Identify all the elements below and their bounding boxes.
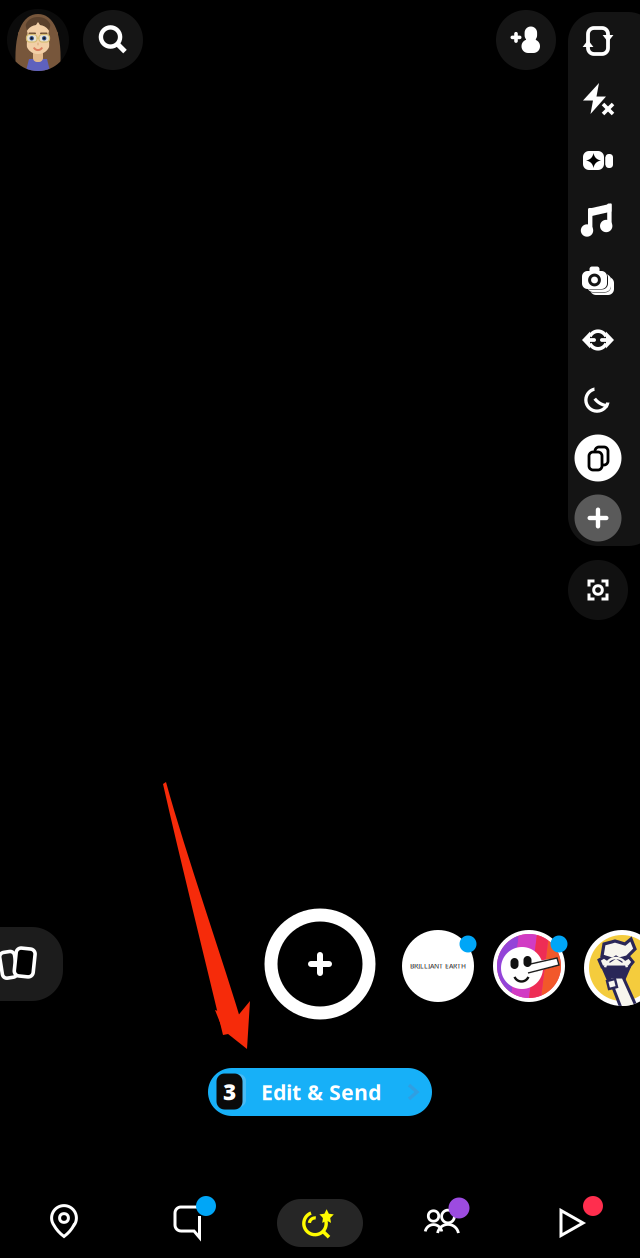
button[interactable]: Stories: [421, 1196, 477, 1248]
button[interactable]: Camera Roll: [582, 263, 614, 297]
button[interactable]: Chat: [165, 1196, 221, 1248]
button[interactable]: Brilliant Earth Lens: [402, 930, 478, 1006]
button[interactable]: Memories: [0, 927, 63, 1001]
button[interactable]: Flip Lens: [582, 323, 614, 357]
button[interactable]: Scan: [568, 560, 628, 620]
button[interactable]: Face Lens: [493, 930, 569, 1006]
button[interactable]: Search: [83, 10, 143, 70]
button[interactable]: Add Friends: [496, 10, 556, 70]
button[interactable]: Capture: [264, 908, 376, 1020]
button[interactable]: Night Mode: [582, 382, 614, 416]
staticText: 3: [223, 1076, 236, 1106]
button[interactable]: Music: [582, 203, 614, 237]
button[interactable]: Profile: [7, 9, 69, 71]
button[interactable]: Flash Off: [582, 83, 614, 117]
button[interactable]: Torch Lens: [584, 930, 640, 1006]
button[interactable]: Spotlight: [550, 1196, 606, 1248]
staticText: Edit & Send: [261, 1078, 381, 1106]
button[interactable]: Video: [582, 143, 614, 177]
button[interactable]: Camera: [277, 1199, 363, 1247]
button[interactable]: Map: [36, 1197, 92, 1249]
button[interactable]: Lenses: [574, 434, 622, 482]
button[interactable]: Flip Camera: [582, 24, 614, 58]
button[interactable]: 3: [208, 1068, 432, 1116]
staticText: BRILLIANT EARTH: [410, 962, 466, 970]
button[interactable]: More Tools: [574, 494, 622, 542]
